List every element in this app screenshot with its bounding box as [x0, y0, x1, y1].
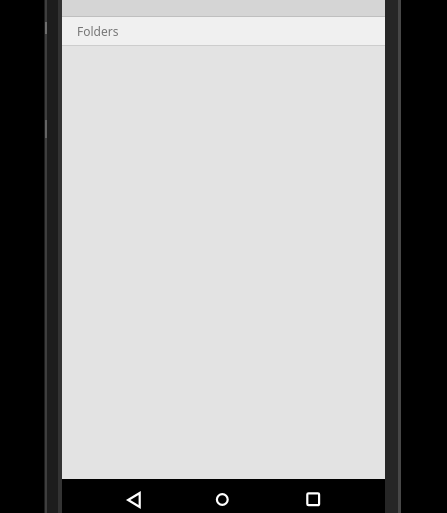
- button[interactable]: [62, 479, 169, 513]
- button[interactable]: [169, 479, 277, 513]
- button[interactable]: [277, 479, 385, 513]
- staticText: Folders: [77, 23, 119, 39]
- button[interactable]: Folders: [62, 17, 385, 45]
